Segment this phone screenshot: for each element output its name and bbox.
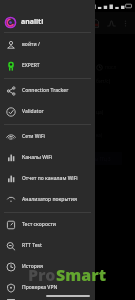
staticText: войти / зарегистрироваться xyxy=(22,41,91,48)
button[interactable]: More options xyxy=(120,18,131,29)
button[interactable]: Validator xyxy=(0,101,95,122)
button[interactable]: Graph xyxy=(106,18,117,29)
staticText: Проверка VPN xyxy=(22,284,58,291)
button[interactable]: Проверка VPN xyxy=(0,277,95,298)
staticText: Connection Tracker xyxy=(22,87,69,94)
staticText: Анализатор покрытия xyxy=(22,196,77,203)
staticText: Отчет по каналам WiFi xyxy=(22,175,78,182)
staticText: Validator xyxy=(22,108,44,115)
staticText: RTT Test xyxy=(22,242,42,249)
staticText: Pro xyxy=(28,264,56,286)
button[interactable]: войти / зарегистрироваться xyxy=(0,34,95,55)
button[interactable]: Connection Tracker xyxy=(0,80,95,101)
button[interactable]: Сети WiFi xyxy=(0,126,95,147)
button[interactable]: EXPERT xyxy=(0,55,95,76)
staticText: Каналы WiFi xyxy=(22,154,53,161)
staticText: analiti xyxy=(21,17,44,27)
staticText: EXPERT xyxy=(22,62,40,69)
staticText: Тест скорости xyxy=(22,221,56,228)
button[interactable]: Export PDF xyxy=(90,18,101,29)
staticText: Smart xyxy=(56,264,107,286)
button[interactable]: История xyxy=(0,256,95,277)
button[interactable]: analiti xyxy=(0,12,95,32)
button[interactable]: Отчет по каналам WiFi xyxy=(0,168,95,189)
button[interactable]: Тест скорости xyxy=(0,214,95,235)
staticText: История xyxy=(22,263,43,270)
staticText: Сети WiFi xyxy=(22,133,45,140)
button[interactable]: Каналы WiFi xyxy=(0,147,95,168)
button[interactable]: Анализатор покрытия xyxy=(0,189,95,210)
button[interactable]: RTT Test xyxy=(0,235,95,256)
